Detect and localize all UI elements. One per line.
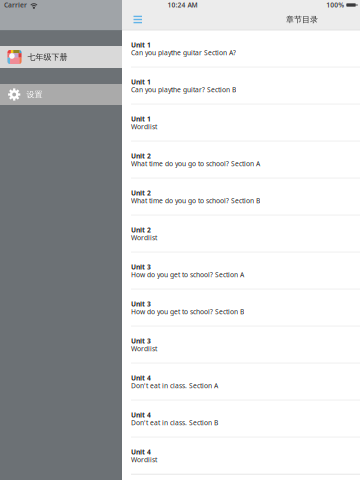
staticText: Can you playthe guitar Section A?	[131, 48, 236, 57]
staticText: Unit 1	[131, 40, 151, 49]
staticText: 设置	[26, 90, 42, 99]
staticText: Unit 1	[131, 77, 151, 86]
button[interactable]: Unit 4	[122, 400, 360, 437]
staticText: Unit 2	[131, 225, 151, 234]
staticText: Unit 3	[131, 336, 151, 345]
staticText: Unit 3	[131, 262, 151, 271]
staticText: Wordlist	[131, 122, 157, 131]
staticText: 10:24 AM	[167, 1, 197, 9]
button[interactable]: Unit 1	[122, 30, 360, 67]
staticText: What time do you go to school? Section B	[131, 196, 260, 205]
button[interactable]: 设置	[0, 84, 122, 105]
staticText: Carrier	[4, 1, 27, 9]
staticText: 100%	[326, 1, 344, 9]
button[interactable]: Unit 4	[122, 437, 360, 474]
staticText: Unit 4	[131, 373, 151, 382]
button[interactable]: 七年级下册	[0, 46, 122, 68]
staticText: Wordlist	[131, 455, 157, 464]
staticText: Don't eat in class. Section A	[131, 381, 218, 390]
staticText: 章节目录	[286, 15, 318, 24]
button[interactable]: Unit 1	[122, 67, 360, 104]
staticText: Unit 3	[131, 299, 151, 308]
staticText: Wordlist	[131, 233, 157, 242]
staticText: What time do you go to school? Section A	[131, 159, 260, 168]
staticText: 七年级下册	[27, 52, 67, 62]
button[interactable]: Unit 3	[122, 252, 360, 289]
staticText: Wordlist	[131, 344, 157, 353]
staticText: Unit 2	[131, 151, 151, 160]
staticText: How do you get to school? Section B	[131, 307, 244, 316]
button[interactable]: Unit 4	[122, 363, 360, 400]
staticText: Unit 4	[131, 410, 151, 419]
staticText: Don't eat in class. Section B	[131, 418, 218, 427]
staticText: Unit 1	[131, 114, 151, 123]
button[interactable]: Unit 1	[122, 104, 360, 141]
staticText: Unit 2	[131, 188, 151, 197]
button[interactable]: Unit 2	[122, 141, 360, 178]
button[interactable]: Unit 2	[122, 215, 360, 252]
staticText: Can you playthe guitar? Section B	[131, 85, 236, 94]
staticText: How do you get to school? Section A	[131, 270, 244, 279]
staticText: Unit 4	[131, 447, 151, 456]
button[interactable]: Unit 3	[122, 326, 360, 363]
button[interactable]: Unit 2	[122, 178, 360, 215]
button[interactable]: Menu	[122, 12, 151, 27]
button[interactable]: Unit 3	[122, 289, 360, 326]
